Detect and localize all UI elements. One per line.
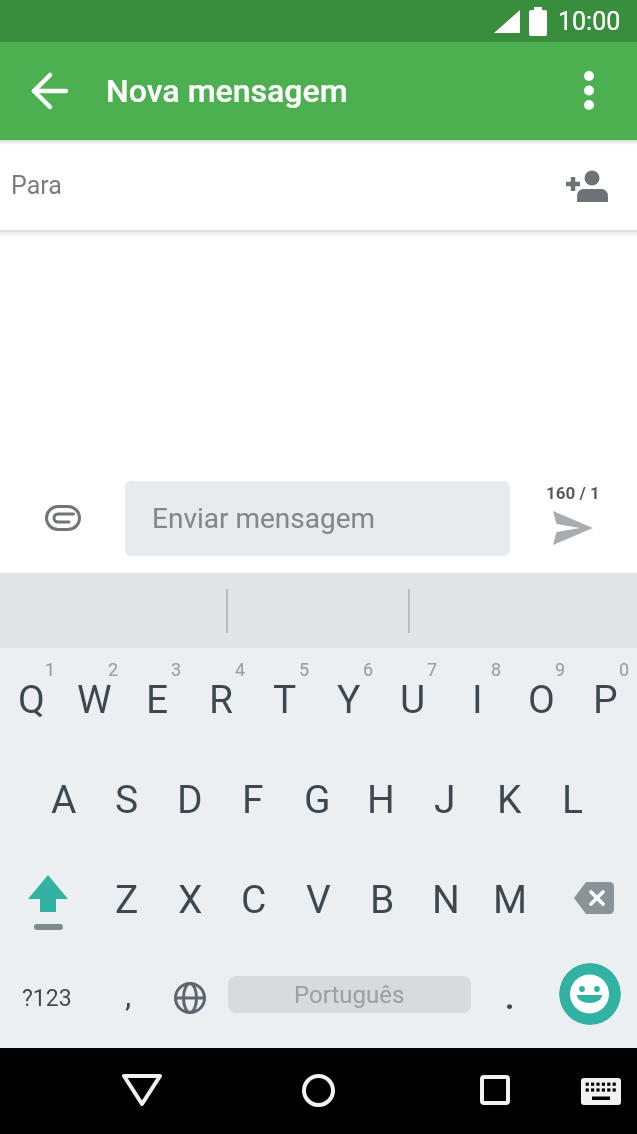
staticText: 10:00 — [558, 7, 621, 36]
button[interactable] — [41, 496, 85, 540]
button[interactable]: P — [573, 648, 637, 748]
button[interactable]: E — [126, 648, 189, 748]
staticText: C — [241, 877, 267, 923]
button[interactable]: , — [108, 948, 148, 1048]
staticText: L — [562, 777, 584, 823]
staticText: Enviar mensagem — [152, 502, 376, 535]
staticText: J — [434, 777, 456, 823]
button[interactable]: H — [349, 748, 413, 848]
button[interactable]: D — [158, 748, 221, 848]
button[interactable] — [474, 1070, 516, 1110]
button[interactable] — [578, 1076, 624, 1106]
button[interactable]: N — [414, 848, 478, 948]
button[interactable]: X — [158, 848, 222, 948]
staticText: R — [209, 677, 234, 723]
staticText: 3 — [171, 659, 182, 680]
staticText: 2 — [108, 659, 119, 680]
staticText: , — [125, 976, 132, 1014]
staticText: G — [304, 777, 331, 823]
button[interactable]: A — [32, 748, 95, 848]
button[interactable] — [0, 848, 95, 948]
staticText: E — [146, 677, 169, 723]
staticText: S — [115, 777, 139, 823]
button[interactable] — [565, 163, 609, 207]
button[interactable] — [26, 67, 74, 115]
button[interactable]: C — [222, 848, 286, 948]
button[interactable] — [542, 848, 637, 948]
button[interactable]: B — [350, 848, 414, 948]
button[interactable]: S — [95, 748, 158, 848]
staticText: Para — [11, 171, 62, 200]
button[interactable]: Y — [317, 648, 381, 748]
button[interactable] — [120, 1070, 164, 1110]
button[interactable]: . — [492, 948, 528, 1048]
button[interactable]: L — [541, 748, 605, 848]
staticText: 6 — [363, 659, 374, 680]
staticText: 0 — [619, 659, 630, 680]
staticText: 4 — [235, 659, 246, 680]
button[interactable]: M — [478, 848, 542, 948]
staticText: O — [528, 677, 555, 723]
button[interactable] — [168, 976, 212, 1020]
staticText: N — [432, 877, 460, 923]
staticText: 5 — [299, 659, 310, 680]
button[interactable] — [550, 508, 596, 548]
staticText: U — [400, 677, 426, 723]
button[interactable]: W — [63, 648, 126, 748]
button[interactable]: ?123 — [10, 948, 84, 1048]
staticText: M — [493, 877, 528, 923]
button[interactable]: Português — [228, 976, 471, 1013]
staticText: 9 — [555, 659, 566, 680]
staticText: Português — [294, 981, 405, 1009]
staticText: 1 — [45, 659, 56, 680]
button[interactable]: G — [285, 748, 349, 848]
button[interactable]: F — [221, 748, 285, 848]
staticText: A — [51, 777, 77, 823]
staticText: 7 — [427, 659, 438, 680]
button[interactable]: R — [189, 648, 253, 748]
staticText: K — [497, 777, 522, 823]
staticText: ?123 — [22, 985, 72, 1012]
staticText: Z — [115, 877, 139, 923]
button[interactable]: Enviar mensagem — [125, 481, 510, 556]
button[interactable]: Z — [95, 848, 158, 948]
staticText: H — [367, 777, 395, 823]
staticText: V — [306, 877, 331, 923]
button[interactable]: Para — [0, 140, 637, 230]
button[interactable]: I — [445, 648, 509, 748]
staticText: I — [472, 677, 483, 723]
staticText: 160 / 1 — [546, 483, 600, 503]
staticText: Q — [18, 677, 45, 723]
button[interactable]: T — [253, 648, 317, 748]
button[interactable]: V — [286, 848, 350, 948]
button[interactable]: K — [477, 748, 541, 848]
staticText: F — [242, 777, 264, 823]
button[interactable] — [565, 67, 613, 115]
staticText: W — [77, 677, 112, 723]
staticText: Y — [337, 677, 361, 723]
staticText: T — [273, 677, 297, 723]
staticText: B — [370, 877, 395, 923]
staticText: Nova mensagem — [106, 72, 348, 110]
button[interactable]: O — [509, 648, 573, 748]
staticText: 8 — [491, 659, 502, 680]
button[interactable] — [297, 1070, 339, 1110]
button[interactable]: U — [381, 648, 445, 748]
staticText: X — [178, 877, 203, 923]
button[interactable]: J — [413, 748, 477, 848]
staticText: . — [505, 979, 515, 1017]
button[interactable]: Q — [0, 648, 63, 748]
staticText: P — [593, 677, 618, 723]
staticText: D — [177, 777, 203, 823]
button[interactable] — [559, 963, 621, 1025]
